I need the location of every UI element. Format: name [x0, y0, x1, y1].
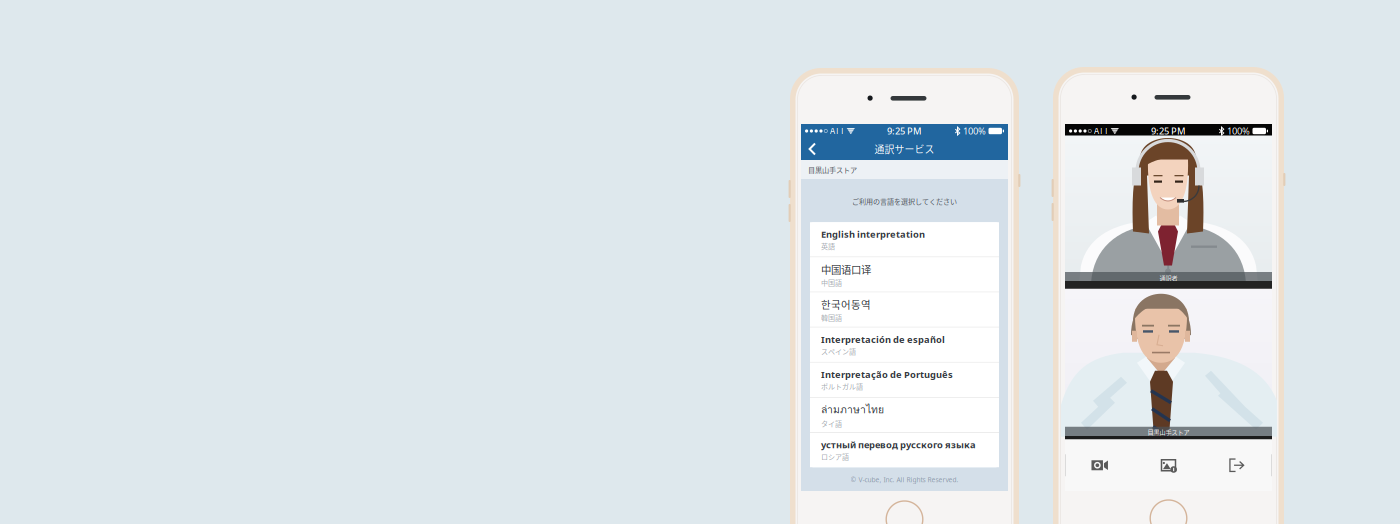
staticText: 目黒山手ストア [1147, 427, 1189, 436]
staticText: ご利用の言語を選択してください [852, 196, 957, 206]
staticText: © V-cube, Inc. All Rights Reserved. [850, 475, 958, 484]
staticText: 目黒山手ストア [808, 164, 857, 175]
staticText: устный перевод русского языка [821, 438, 976, 451]
button[interactable]: Back [801, 138, 827, 159]
staticText: 通訳者 [1159, 273, 1177, 282]
staticText: ATT [830, 126, 844, 136]
staticText: 100% [963, 125, 986, 137]
button[interactable]: English interpretation [810, 222, 999, 257]
button[interactable]: Switch camera [1066, 439, 1134, 491]
staticText: 韓国語 [821, 312, 842, 322]
staticText: 英語 [821, 241, 835, 251]
staticText: Interpretação de Português [821, 368, 953, 381]
staticText: 中国語 [821, 277, 842, 287]
staticText: ล่ามภาษาไทย [821, 401, 884, 418]
staticText: スペイン語 [821, 346, 856, 356]
button[interactable]: Interpretação de Português [810, 363, 999, 397]
button[interactable]: 한국어동역 [810, 292, 999, 327]
staticText: 100% [1227, 125, 1250, 137]
staticText: ATT [1094, 126, 1108, 136]
staticText: Interpretación de español [821, 333, 945, 346]
staticText: 한국어동역 [821, 297, 871, 312]
button[interactable]: Share image [1134, 439, 1203, 491]
staticText: 中国语口译 [821, 262, 871, 277]
button[interactable]: Leave call [1203, 439, 1271, 491]
staticText: ポルトガル語 [821, 381, 863, 391]
button[interactable]: 中国语口译 [810, 257, 999, 292]
staticText: ロシア語 [821, 451, 849, 462]
button[interactable]: устный перевод русского языка [810, 433, 999, 467]
staticText: English interpretation [821, 228, 925, 240]
button[interactable]: ล่ามภาษาไทย [810, 398, 999, 432]
staticText: 9:25 PM [887, 125, 922, 137]
staticText: 9:25 PM [1151, 125, 1186, 137]
staticText: タイ語 [821, 418, 842, 428]
button[interactable]: Interpretación de español [810, 327, 999, 362]
staticText: 通訳サービス [874, 142, 934, 156]
